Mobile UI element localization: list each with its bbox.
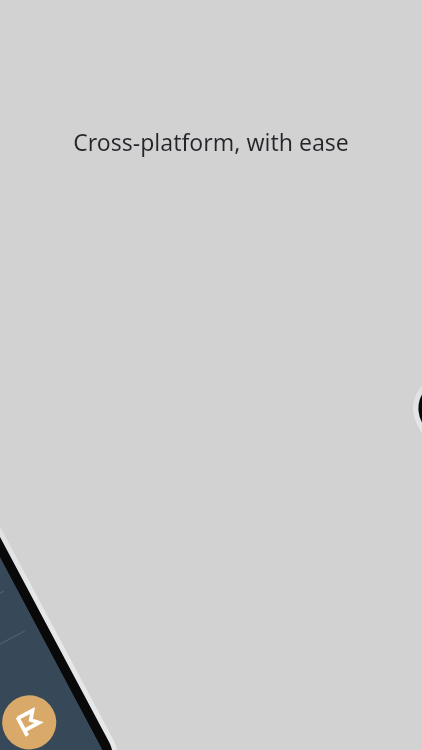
button[interactable]: Add — [0, 626, 48, 674]
staticText: Cross-platform, with ease — [16, 126, 406, 157]
